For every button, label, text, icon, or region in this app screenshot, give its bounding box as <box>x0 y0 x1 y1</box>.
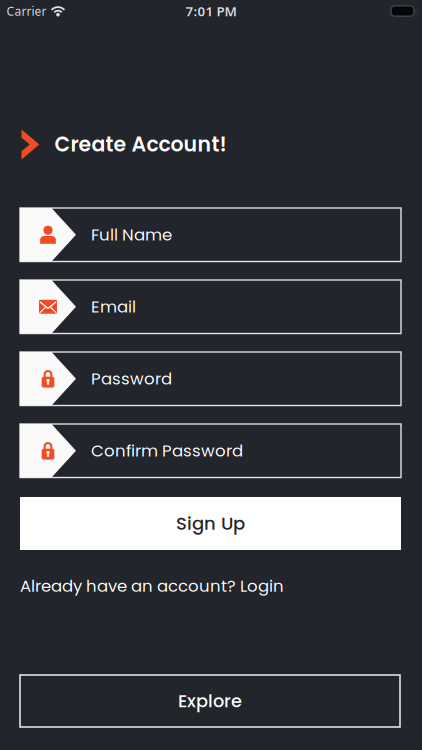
button[interactable]: Confirm Password <box>20 424 401 477</box>
button[interactable]: Password <box>20 352 401 405</box>
staticText: Explore <box>178 689 242 713</box>
staticText: Full Name <box>91 223 172 246</box>
button[interactable]: Email <box>20 280 401 333</box>
button[interactable]: Full Name <box>20 208 401 261</box>
staticText: Carrier <box>6 3 46 19</box>
staticText: 7:01 PM <box>185 2 236 20</box>
button[interactable]: Sign Up <box>20 497 401 550</box>
staticText: Already have an account? Login <box>20 574 284 597</box>
staticText: Password <box>91 367 172 390</box>
button[interactable]: Already have an account? Login <box>20 574 390 598</box>
staticText: Sign Up <box>176 511 245 536</box>
staticText: Email <box>91 295 136 318</box>
staticText: Create Account! <box>54 130 226 159</box>
staticText: Confirm Password <box>91 439 243 462</box>
button[interactable]: Explore <box>20 675 400 727</box>
